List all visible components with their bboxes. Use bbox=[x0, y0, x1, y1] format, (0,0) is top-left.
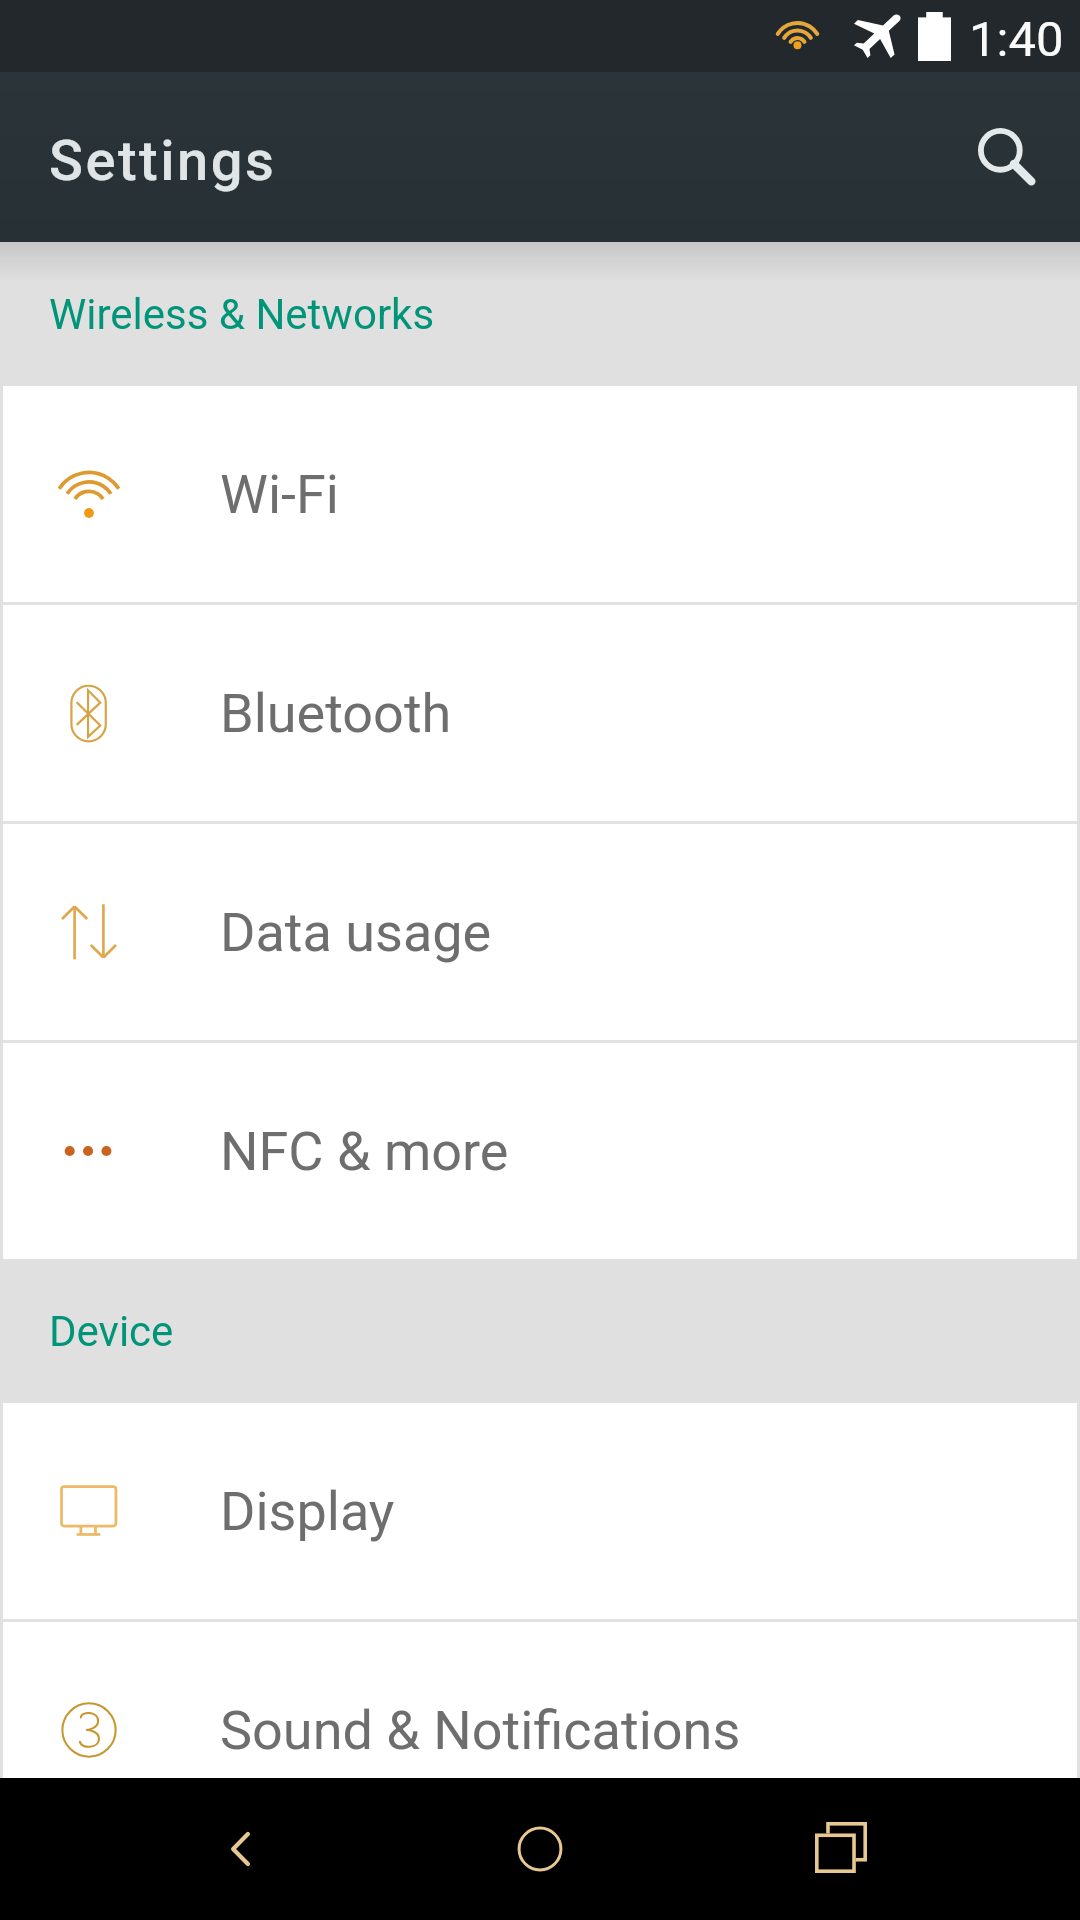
staticText: Device bbox=[49, 1307, 174, 1356]
staticText: Bluetooth bbox=[220, 682, 452, 745]
staticText: Display bbox=[220, 1480, 395, 1543]
button[interactable]: Recents bbox=[791, 1799, 891, 1899]
button[interactable]: Home bbox=[490, 1799, 590, 1899]
button[interactable]: Display bbox=[3, 1403, 1077, 1619]
button[interactable]: Search bbox=[959, 109, 1055, 205]
staticText: Wireless & Networks bbox=[49, 290, 435, 339]
button[interactable]: Sound & Notifications bbox=[3, 1622, 1077, 1778]
staticText: Data usage bbox=[220, 901, 492, 964]
button[interactable]: Bluetooth bbox=[3, 605, 1077, 821]
staticText: NFC & more bbox=[220, 1120, 509, 1183]
button[interactable]: NFC & more bbox=[3, 1043, 1077, 1259]
button[interactable]: Back bbox=[190, 1799, 290, 1899]
staticText: Wi-Fi bbox=[220, 463, 339, 526]
button[interactable]: Data usage bbox=[3, 824, 1077, 1040]
staticText: 1:40 bbox=[969, 11, 1064, 68]
staticText: Sound & Notifications bbox=[220, 1699, 741, 1762]
staticText: Settings bbox=[49, 128, 277, 194]
button[interactable]: Wi-Fi bbox=[3, 386, 1077, 602]
